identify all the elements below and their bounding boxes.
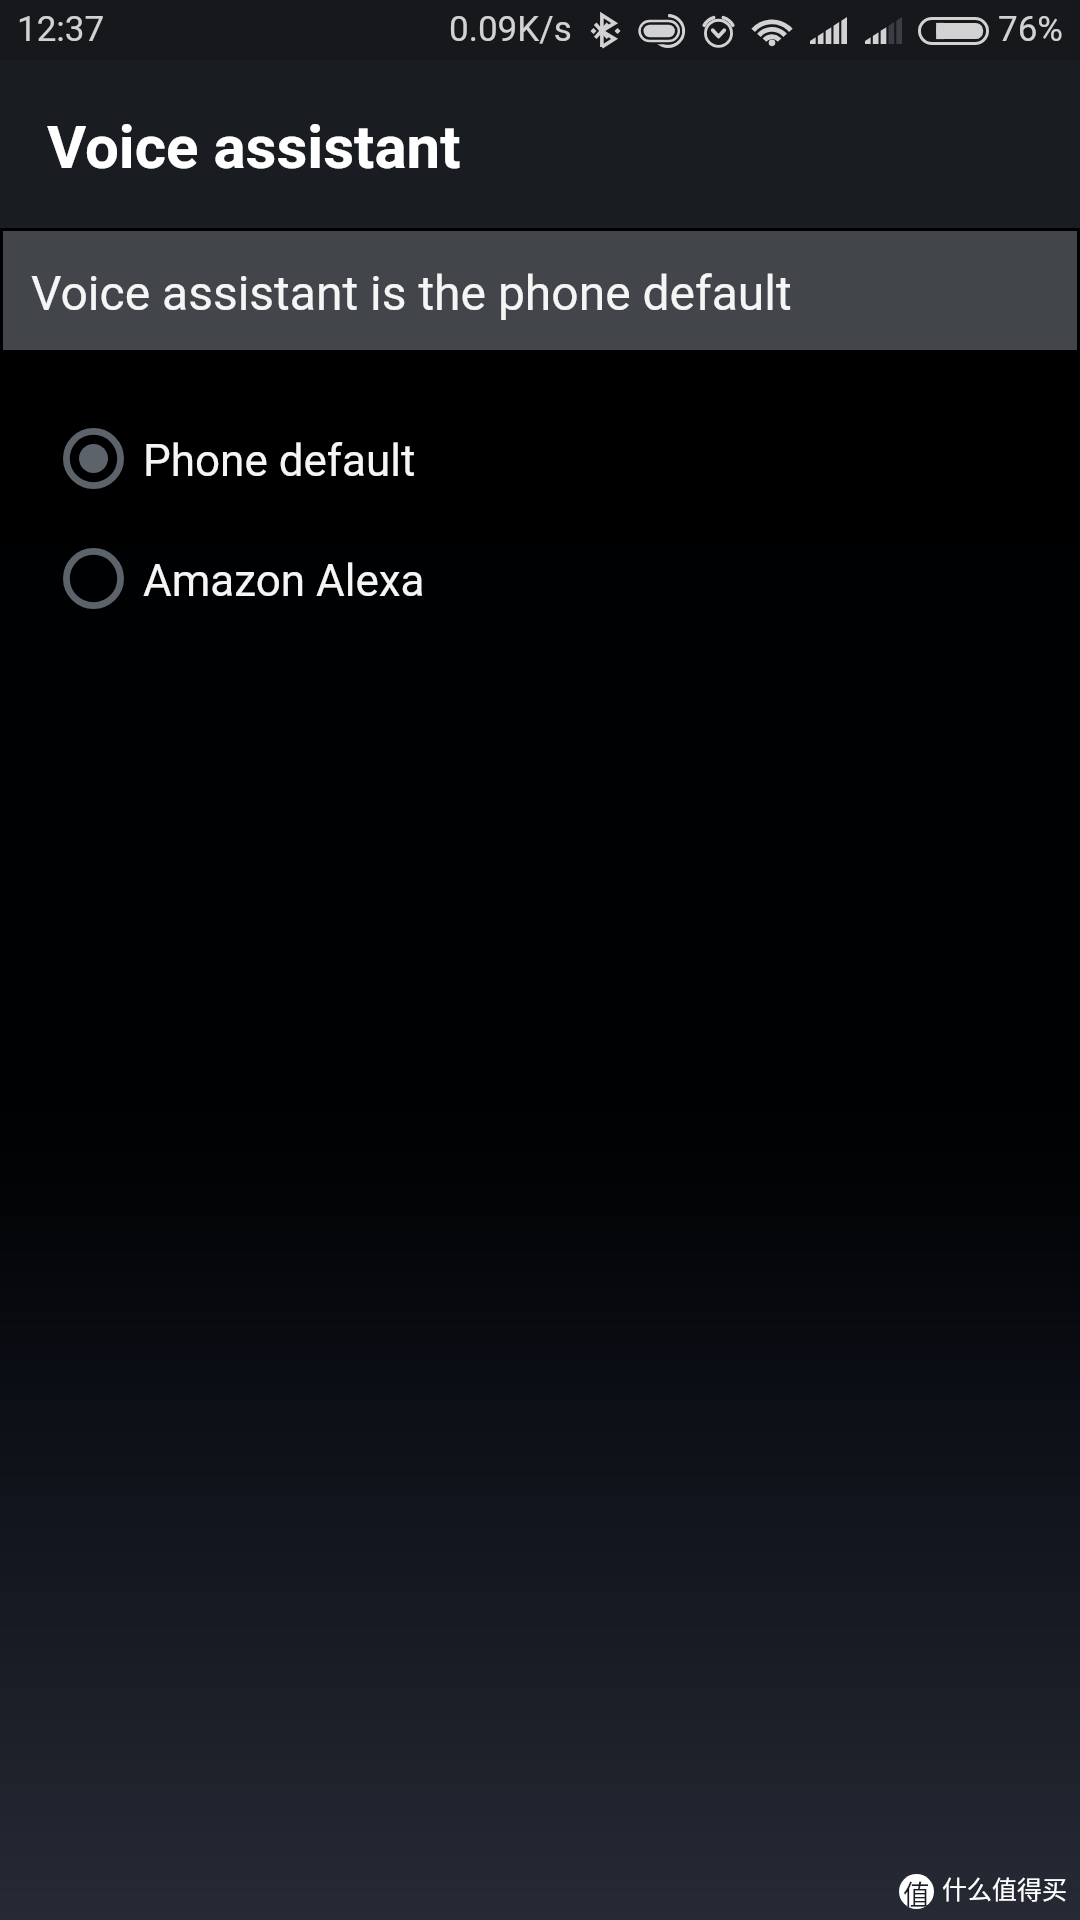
staticText: 12:37 <box>17 9 105 50</box>
button[interactable]: Voice assistant is the phone default <box>3 231 1077 350</box>
button[interactable]: Phone default <box>0 398 1080 518</box>
other: Bluetooth audio connected <box>591 15 620 47</box>
other: Alarm set <box>702 14 735 47</box>
staticText: 值 <box>903 1874 930 1909</box>
staticText: 76% <box>998 9 1063 50</box>
staticText: Voice assistant is the phone default <box>31 265 792 321</box>
other: Wi-Fi connected <box>752 16 792 45</box>
staticText: Voice assistant <box>47 112 461 182</box>
button[interactable]: Amazon Alexa <box>0 518 1080 638</box>
staticText: Amazon Alexa <box>143 555 425 607</box>
staticText: 0.09K/s <box>449 9 572 50</box>
other: Mobile signal <box>865 17 902 44</box>
other: Battery 76 percent <box>918 17 989 45</box>
other: Mobile signal full <box>810 17 847 44</box>
other: Data saver on <box>639 14 686 48</box>
staticText: Phone default <box>143 435 416 487</box>
staticText: 什么值得买 <box>942 1870 1068 1906</box>
